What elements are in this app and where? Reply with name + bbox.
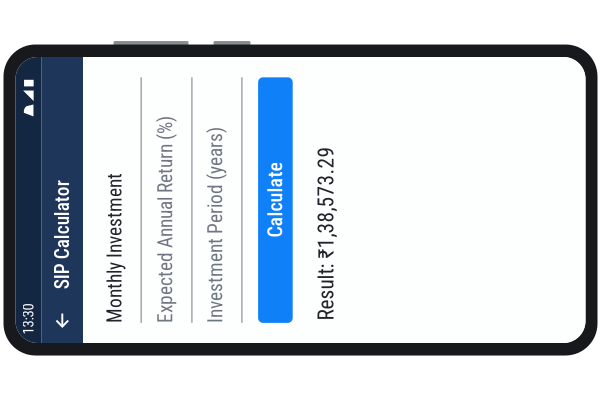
staticText: Expected Annual Return (%): [178, 54, 385, 76]
button[interactable]: Expected Annual Return (%): [178, 54, 423, 92]
button[interactable]: Calculate: [178, 158, 423, 192]
staticText: Result: ₹1,38,573.29: [180, 213, 354, 238]
button[interactable]: Investment Period (years): [178, 104, 423, 142]
staticText: Investment Period (years): [178, 104, 374, 126]
staticText: Calculate: [263, 163, 338, 187]
